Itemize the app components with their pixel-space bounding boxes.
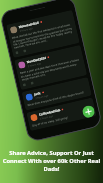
staticText: 2 hours ago [39, 114, 54, 120]
staticText: Day 47 of no sleep. Still going! [32, 110, 93, 128]
staticText: Jack [34, 91, 41, 96]
button[interactable]: New post [81, 104, 96, 119]
staticText: 2 hours ago [27, 61, 42, 67]
button[interactable]: CoffeeAndKids [26, 97, 97, 131]
staticText: MountainDad [18, 20, 40, 29]
button[interactable]: NewDad2024 [14, 45, 87, 90]
staticText: What started out like that weekend in sm… [12, 22, 75, 50]
staticText: What does everyone think of this diaper … [27, 89, 88, 107]
staticText: 2 hours ago [35, 93, 49, 99]
staticText: Share Advice, Support Or Just Connect Wi… [1, 149, 102, 173]
staticText: CoffeeAndKids [39, 108, 61, 117]
button[interactable]: Jack [21, 77, 92, 111]
staticText: 2 hours ago [19, 26, 33, 32]
staticText: Been a year and two days since I became … [20, 57, 83, 82]
button[interactable]: MountainDad [6, 10, 80, 58]
staticText: NewDad2024 [26, 56, 47, 64]
